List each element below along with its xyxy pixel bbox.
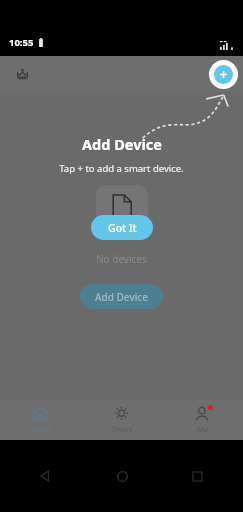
staticText: Smart bbox=[111, 424, 133, 434]
staticText: 10:55 bbox=[9, 36, 34, 49]
staticText: Me bbox=[197, 424, 209, 434]
button[interactable]: Back bbox=[34, 464, 58, 488]
staticText: Got It bbox=[108, 221, 137, 235]
button[interactable]: Add Device bbox=[80, 284, 163, 309]
button[interactable]: Got It bbox=[91, 215, 153, 240]
staticText: Home bbox=[30, 424, 52, 434]
staticText: No devices bbox=[96, 252, 147, 266]
button[interactable]: Home bbox=[0, 400, 81, 440]
staticText: Add Device bbox=[95, 290, 149, 304]
button[interactable]: Smart bbox=[81, 400, 162, 440]
button[interactable]: Add device bbox=[209, 60, 238, 89]
button[interactable]: Home bbox=[110, 464, 134, 488]
staticText: Add Device bbox=[82, 134, 162, 154]
button[interactable]: Me bbox=[162, 400, 243, 440]
button[interactable]: Recents bbox=[185, 464, 209, 488]
staticText: Tap + to add a smart device. bbox=[59, 162, 184, 175]
button[interactable]: Home selector bbox=[11, 63, 33, 85]
